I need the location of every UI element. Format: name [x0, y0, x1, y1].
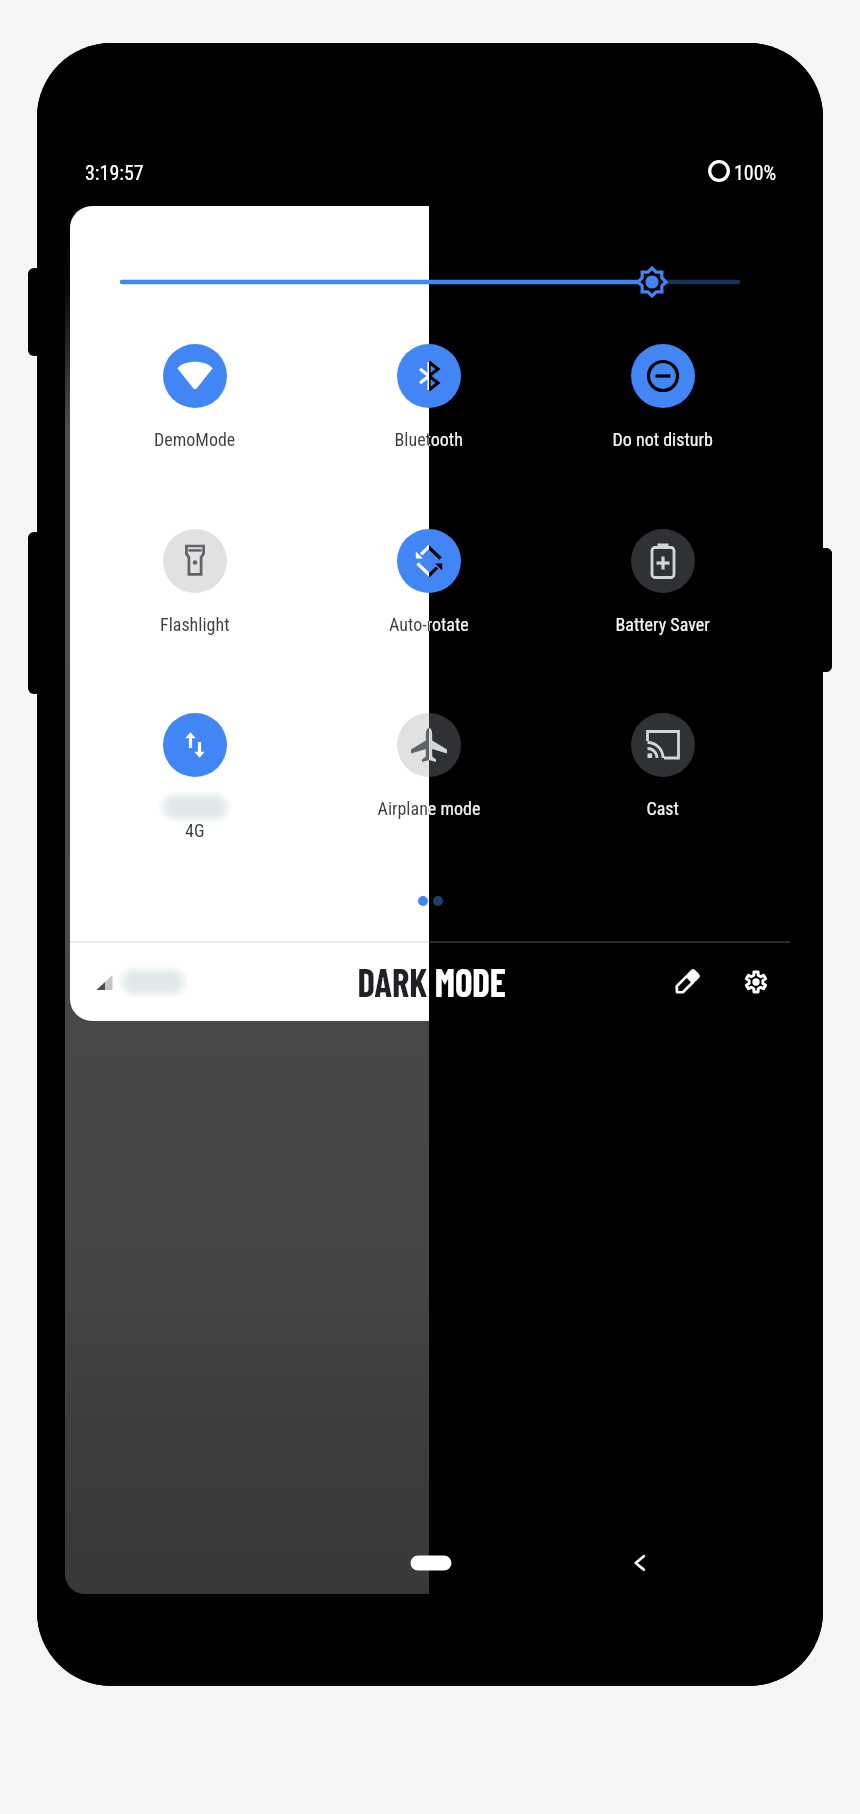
- button[interactable]: Brightness: [112, 252, 768, 312]
- button[interactable]: Auto-rotate: [381, 519, 477, 635]
- button[interactable]: Do not disturb: [615, 334, 711, 450]
- button[interactable]: Mobile data: [147, 703, 243, 819]
- button[interactable]: Back: [601, 1530, 681, 1596]
- button[interactable]: Bluetooth: [381, 334, 477, 450]
- button[interactable]: Home: [391, 1522, 471, 1596]
- button[interactable]: Settings: [727, 953, 785, 1011]
- button[interactable]: Edit tiles: [658, 953, 716, 1011]
- button[interactable]: Battery Saver: [615, 519, 711, 635]
- button[interactable]: Cast: [615, 703, 711, 819]
- button[interactable]: DemoMode: [147, 334, 243, 450]
- button[interactable]: Flashlight: [147, 519, 243, 635]
- button[interactable]: Airplane mode: [381, 703, 477, 819]
